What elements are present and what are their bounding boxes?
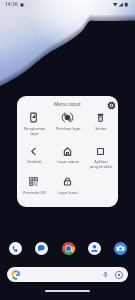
staticText: 14:36: [5, 1, 18, 8]
button[interactable]: Aplikasi yang terakhir: [84, 137, 118, 164]
button[interactable]: Rangkuman layar: [17, 103, 51, 130]
button[interactable]: Messages: [34, 241, 48, 255]
staticText: Menu cepat: [54, 101, 81, 108]
staticText: Layar utama: [57, 159, 79, 164]
staticText: Rangkuman layar: [24, 126, 45, 136]
staticText: Senter: [95, 126, 107, 131]
button[interactable]: Layar kunci: [51, 167, 85, 194]
staticText: Aplikasi yang terakhir: [89, 159, 113, 169]
button[interactable]: Layar utama: [51, 137, 85, 164]
staticText: Kembali: [27, 159, 42, 164]
button[interactable]: [7, 267, 128, 282]
button[interactable]: Quick menu settings: [106, 100, 116, 110]
button[interactable]: Camera: [113, 241, 127, 255]
button[interactable]: Senter: [84, 103, 118, 130]
button[interactable]: Perekam layar: [51, 103, 85, 130]
staticText: Perekam layar: [56, 126, 81, 131]
button[interactable]: Chrome: [61, 241, 75, 255]
staticText: Pemindai QR: [23, 190, 46, 195]
button[interactable]: Phone: [8, 241, 22, 255]
button[interactable]: Pemindai QR: [17, 167, 51, 194]
button[interactable]: Kembali: [17, 137, 51, 164]
staticText: Layar kunci: [58, 190, 78, 195]
button[interactable]: Contacts: [87, 241, 101, 255]
